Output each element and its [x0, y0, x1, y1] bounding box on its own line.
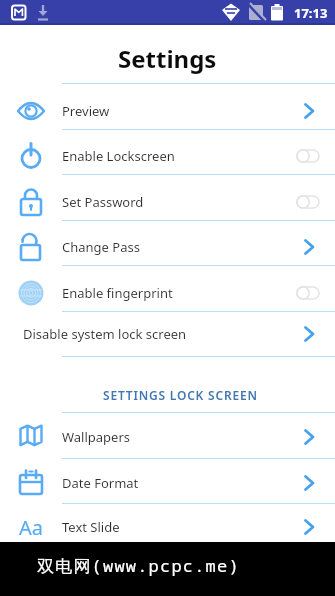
button[interactable]: Date Format — [0, 459, 335, 503]
button[interactable]: Enable Lockscreen — [0, 130, 335, 174]
staticText: Change Pass — [62, 238, 140, 256]
staticText: Set Password — [62, 193, 144, 211]
staticText: Wallpapers — [62, 428, 131, 446]
staticText: 双电网(www.pcpc.me) — [37, 554, 240, 577]
staticText: Date Format — [62, 474, 139, 492]
button[interactable]: Preview — [0, 84, 335, 129]
staticText: Enable fingerprint — [62, 284, 173, 302]
button[interactable]: Disable system lock screen — [0, 312, 335, 356]
button[interactable]: Wallpapers — [0, 413, 335, 458]
staticText: Aa — [19, 514, 43, 541]
staticText: Settings — [118, 42, 217, 75]
button[interactable]: Enable fingerprint — [0, 266, 335, 311]
staticText: Disable system lock screen — [23, 325, 187, 343]
staticText: Preview — [62, 102, 110, 120]
staticText: Enable Lockscreen — [62, 147, 175, 165]
button[interactable]: Set Password — [0, 175, 335, 220]
staticText: 17:13 — [294, 4, 328, 22]
staticText: Text Slide — [62, 518, 120, 536]
button[interactable]: Aa — [0, 504, 335, 542]
button[interactable]: Change Pass — [0, 221, 335, 265]
staticText: SETTINGS LOCK SCREEN — [103, 387, 258, 403]
